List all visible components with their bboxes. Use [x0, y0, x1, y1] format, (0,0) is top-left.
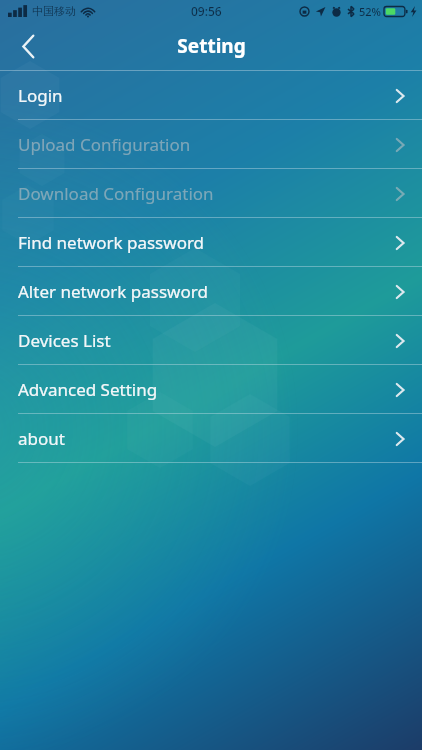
button[interactable]: Advanced Setting	[0, 365, 422, 414]
button[interactable]: Find network password	[0, 218, 422, 267]
staticText: Find network password	[18, 231, 205, 254]
staticText: about	[18, 427, 65, 450]
button[interactable]: Alter network password	[0, 267, 422, 316]
staticText: 52%	[359, 4, 381, 19]
staticText: 09:56	[191, 3, 222, 19]
staticText: Setting	[177, 33, 246, 59]
button[interactable]: Download Configuration	[0, 169, 422, 218]
button[interactable]: about	[0, 414, 422, 463]
button[interactable]: Devices List	[0, 316, 422, 365]
staticText: Download Configuration	[18, 182, 214, 205]
staticText: 中国移动	[32, 4, 76, 18]
staticText: Devices List	[18, 329, 111, 352]
staticText: Upload Configuration	[18, 133, 191, 156]
staticText: Alter network password	[18, 280, 208, 303]
staticText: Advanced Setting	[18, 378, 158, 401]
button[interactable]: Login	[0, 71, 422, 120]
button[interactable]: Back	[0, 22, 56, 70]
button[interactable]: Upload Configuration	[0, 120, 422, 169]
staticText: Login	[18, 84, 63, 107]
